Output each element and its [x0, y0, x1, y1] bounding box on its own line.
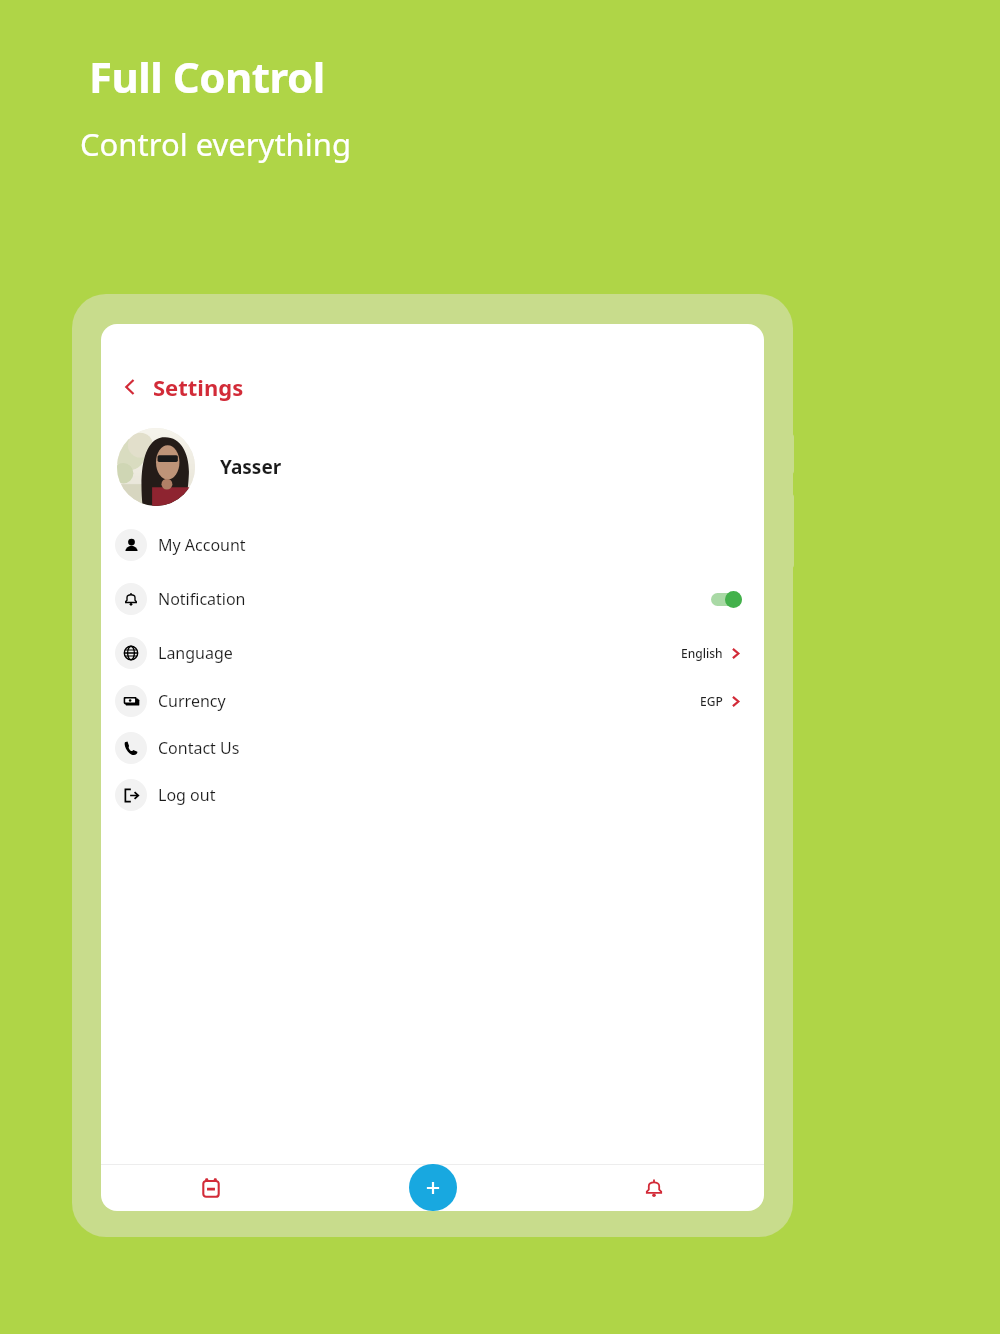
other: Back [115, 372, 145, 402]
button[interactable]: Notification toggle [711, 591, 742, 608]
button[interactable]: Contact Us [101, 727, 764, 769]
button[interactable]: Orders [188, 1165, 234, 1211]
staticText: Log out [158, 784, 216, 806]
staticText: Contact Us [158, 737, 240, 759]
staticText: Yasser [220, 454, 282, 480]
staticText: EGP [700, 693, 723, 709]
staticText: Notification [158, 588, 246, 610]
staticText: Settings [153, 372, 244, 402]
staticText: English [681, 645, 723, 661]
button[interactable]: Notifications [631, 1165, 677, 1211]
staticText: Control everything [80, 123, 351, 165]
staticText: Currency [158, 690, 226, 712]
staticText: Full Control [89, 48, 325, 105]
button[interactable]: Yasser [117, 428, 282, 506]
button[interactable]: Log out [101, 774, 764, 816]
button[interactable]: My Account [101, 524, 764, 566]
button[interactable]: Currency [101, 680, 764, 722]
button[interactable]: Back [115, 372, 244, 402]
staticText: My Account [158, 534, 246, 556]
button[interactable]: Language [101, 632, 764, 674]
staticText: Language [158, 642, 233, 664]
button[interactable]: Add [409, 1164, 457, 1211]
button[interactable]: Notification [101, 578, 764, 620]
